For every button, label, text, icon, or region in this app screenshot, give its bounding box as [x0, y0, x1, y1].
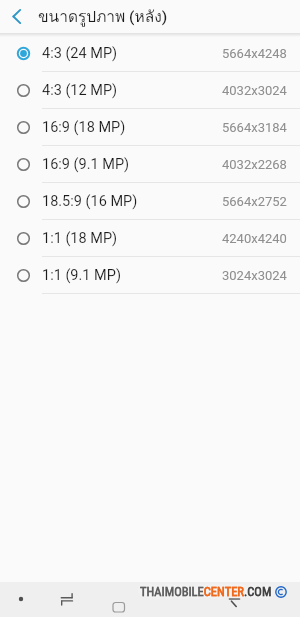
- button[interactable]: 1:1 (18 MP): [0, 220, 300, 257]
- staticText: THAIMOBILECENTER.COM: [140, 584, 272, 599]
- button[interactable]: 16:9 (9.1 MP): [0, 146, 300, 183]
- button[interactable]: 4:3 (24 MP): [0, 35, 300, 72]
- button[interactable]: [0, 0, 33, 33]
- staticText: THAIMOBILECENTER.COM: [140, 584, 272, 599]
- staticText: 16:9 (18 MP): [42, 119, 126, 136]
- staticText: ขนาดรูปภาพ (หลัง): [38, 4, 168, 29]
- staticText: 5664x4248: [222, 46, 287, 61]
- staticText: 16:9 (9.1 MP): [42, 156, 130, 173]
- button[interactable]: 1:1 (9.1 MP): [0, 257, 300, 294]
- staticText: 18.5:9 (16 MP): [42, 193, 138, 210]
- staticText: 4240x4240: [222, 231, 287, 246]
- staticText: 3024x3024: [222, 268, 287, 283]
- staticText: 4032x3024: [222, 83, 287, 98]
- staticText: 4:3 (12 MP): [42, 82, 118, 99]
- staticText: 5664x2752: [222, 194, 287, 209]
- button[interactable]: 4:3 (12 MP): [0, 72, 300, 109]
- staticText: 5664x3184: [222, 120, 287, 135]
- staticText: 4:3 (24 MP): [42, 45, 118, 62]
- staticText: 4032x2268: [222, 157, 287, 172]
- button[interactable]: 18.5:9 (16 MP): [0, 183, 300, 220]
- staticText: 1:1 (18 MP): [42, 230, 118, 247]
- staticText: 1:1 (9.1 MP): [42, 267, 121, 284]
- button[interactable]: 16:9 (18 MP): [0, 109, 300, 146]
